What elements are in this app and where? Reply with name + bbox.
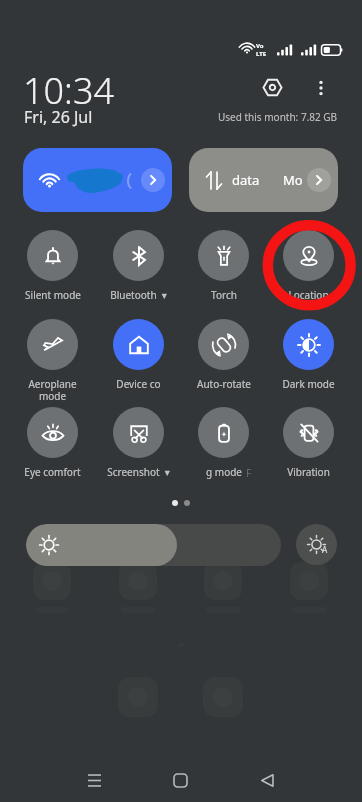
- button[interactable]: g mode: [181, 407, 266, 479]
- staticText: Fri, 26 Jul: [24, 106, 93, 128]
- button[interactable]: Location: [266, 230, 351, 302]
- staticText: Mo: [283, 171, 303, 189]
- button[interactable]: Eye comfort: [10, 407, 95, 479]
- staticText: Bluetooth ▾: [110, 288, 167, 302]
- button[interactable]: Back: [243, 756, 291, 802]
- staticText: data: [232, 171, 260, 189]
- button[interactable]: Settings: [258, 73, 287, 102]
- staticText: Eye comfort: [24, 465, 81, 479]
- button[interactable]: Device co: [96, 319, 181, 391]
- staticText: Used this month: 7.82 GB: [218, 110, 338, 124]
- staticText: F: [246, 466, 252, 480]
- button[interactable]: [26, 524, 281, 566]
- staticText: Auto-rotate: [197, 377, 251, 391]
- staticText: 10:34: [23, 66, 115, 115]
- button[interactable]: Vibration: [266, 407, 351, 479]
- button[interactable]: Dark mode: [266, 319, 351, 391]
- staticText: Vo: [256, 42, 264, 50]
- staticText: A: [322, 544, 328, 555]
- button[interactable]: Mobile data settings: [307, 168, 331, 192]
- button[interactable]: Auto-rotate: [181, 319, 266, 391]
- button[interactable]: Torch: [181, 230, 266, 302]
- staticText: LTE: [256, 50, 267, 58]
- button[interactable]: Wi-Fi settings: [141, 168, 165, 192]
- button[interactable]: Screenshot ▾: [96, 407, 181, 479]
- staticText: Location: [288, 288, 329, 302]
- button[interactable]: Silent mode: [10, 230, 95, 302]
- button[interactable]: Recents: [70, 756, 118, 802]
- button[interactable]: Wi-Fi settings: [23, 148, 172, 212]
- staticText: g mode: [206, 465, 242, 479]
- button[interactable]: Home: [156, 756, 204, 802]
- staticText: Screenshot ▾: [107, 465, 170, 479]
- staticText: Torch: [211, 288, 237, 302]
- button[interactable]: Auto brightness: [296, 524, 337, 565]
- staticText: Device co: [116, 377, 161, 391]
- staticText: Vibration: [287, 465, 330, 479]
- staticText: Silent mode: [25, 288, 81, 302]
- staticText: Dark mode: [282, 377, 335, 391]
- button[interactable]: More options: [306, 73, 335, 102]
- button[interactable]: Aeroplane mode: [10, 319, 95, 403]
- button[interactable]: Bluetooth ▾: [96, 230, 181, 302]
- staticText: Aeroplane mode: [28, 377, 77, 403]
- button[interactable]: data: [189, 148, 338, 212]
